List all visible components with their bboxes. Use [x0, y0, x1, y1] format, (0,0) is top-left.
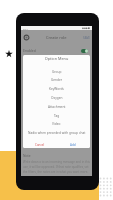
- staticText: ●●●■: [82, 27, 90, 30]
- button[interactable]: Video: [23, 119, 90, 128]
- staticText: Note: [23, 153, 31, 157]
- button[interactable]: SAVE: [83, 36, 90, 40]
- button[interactable]: Oxygen: [23, 93, 90, 102]
- staticText: KeyWords: [49, 87, 64, 91]
- button[interactable]: Attachment: [23, 102, 90, 111]
- staticText: 9:41: [23, 27, 28, 30]
- button[interactable]: KeyWords: [23, 84, 90, 93]
- staticText: Add: [70, 143, 76, 147]
- staticText: Gender: [51, 78, 63, 82]
- staticText: Nadio when preceded with group chat: [28, 131, 86, 135]
- staticText: Write down a to an incoming message and …: [23, 160, 91, 174]
- button[interactable]: Tag: [23, 111, 90, 120]
- button[interactable]: Group: [23, 67, 90, 76]
- staticText: Tag: [54, 114, 60, 118]
- button[interactable]: Gender: [23, 75, 90, 84]
- staticText: Option Menu: [23, 56, 90, 61]
- staticText: Attachment: [48, 105, 66, 109]
- staticText: Cancel: [35, 143, 45, 147]
- staticText: Video: [52, 122, 61, 126]
- button[interactable]: Enabled: [23, 45, 88, 56]
- staticText: Enabled: [23, 48, 36, 53]
- button[interactable]: Cancel: [23, 141, 56, 148]
- staticText: Group: [52, 70, 62, 74]
- staticText: Create role: [46, 35, 67, 40]
- button[interactable]: Add: [56, 141, 90, 148]
- button[interactable]: Nadio when preceded with group chat: [23, 129, 90, 137]
- staticText: Oxygen: [51, 96, 63, 100]
- button[interactable]: Back: [22, 33, 31, 42]
